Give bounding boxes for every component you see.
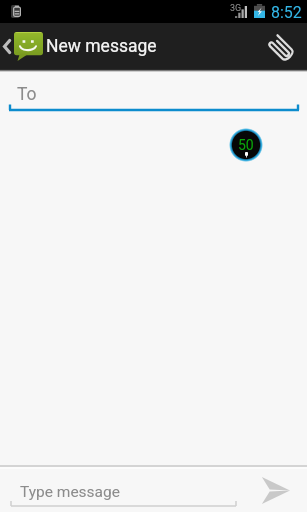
staticText: 8:52 — [271, 3, 302, 22]
staticText: Type message — [20, 483, 120, 501]
button[interactable]: To — [0, 72, 307, 111]
button[interactable]: Type message — [0, 469, 237, 512]
button[interactable]: New message — [0, 23, 307, 69]
button[interactable]: Send message — [237, 469, 307, 512]
staticText: 3G — [230, 3, 242, 14]
staticText: 50 — [238, 137, 254, 153]
staticText: To — [17, 84, 37, 105]
staticText: New message — [46, 36, 157, 57]
button[interactable]: Attach file — [261, 23, 307, 69]
button[interactable]: Characters remaining — [229, 128, 263, 162]
